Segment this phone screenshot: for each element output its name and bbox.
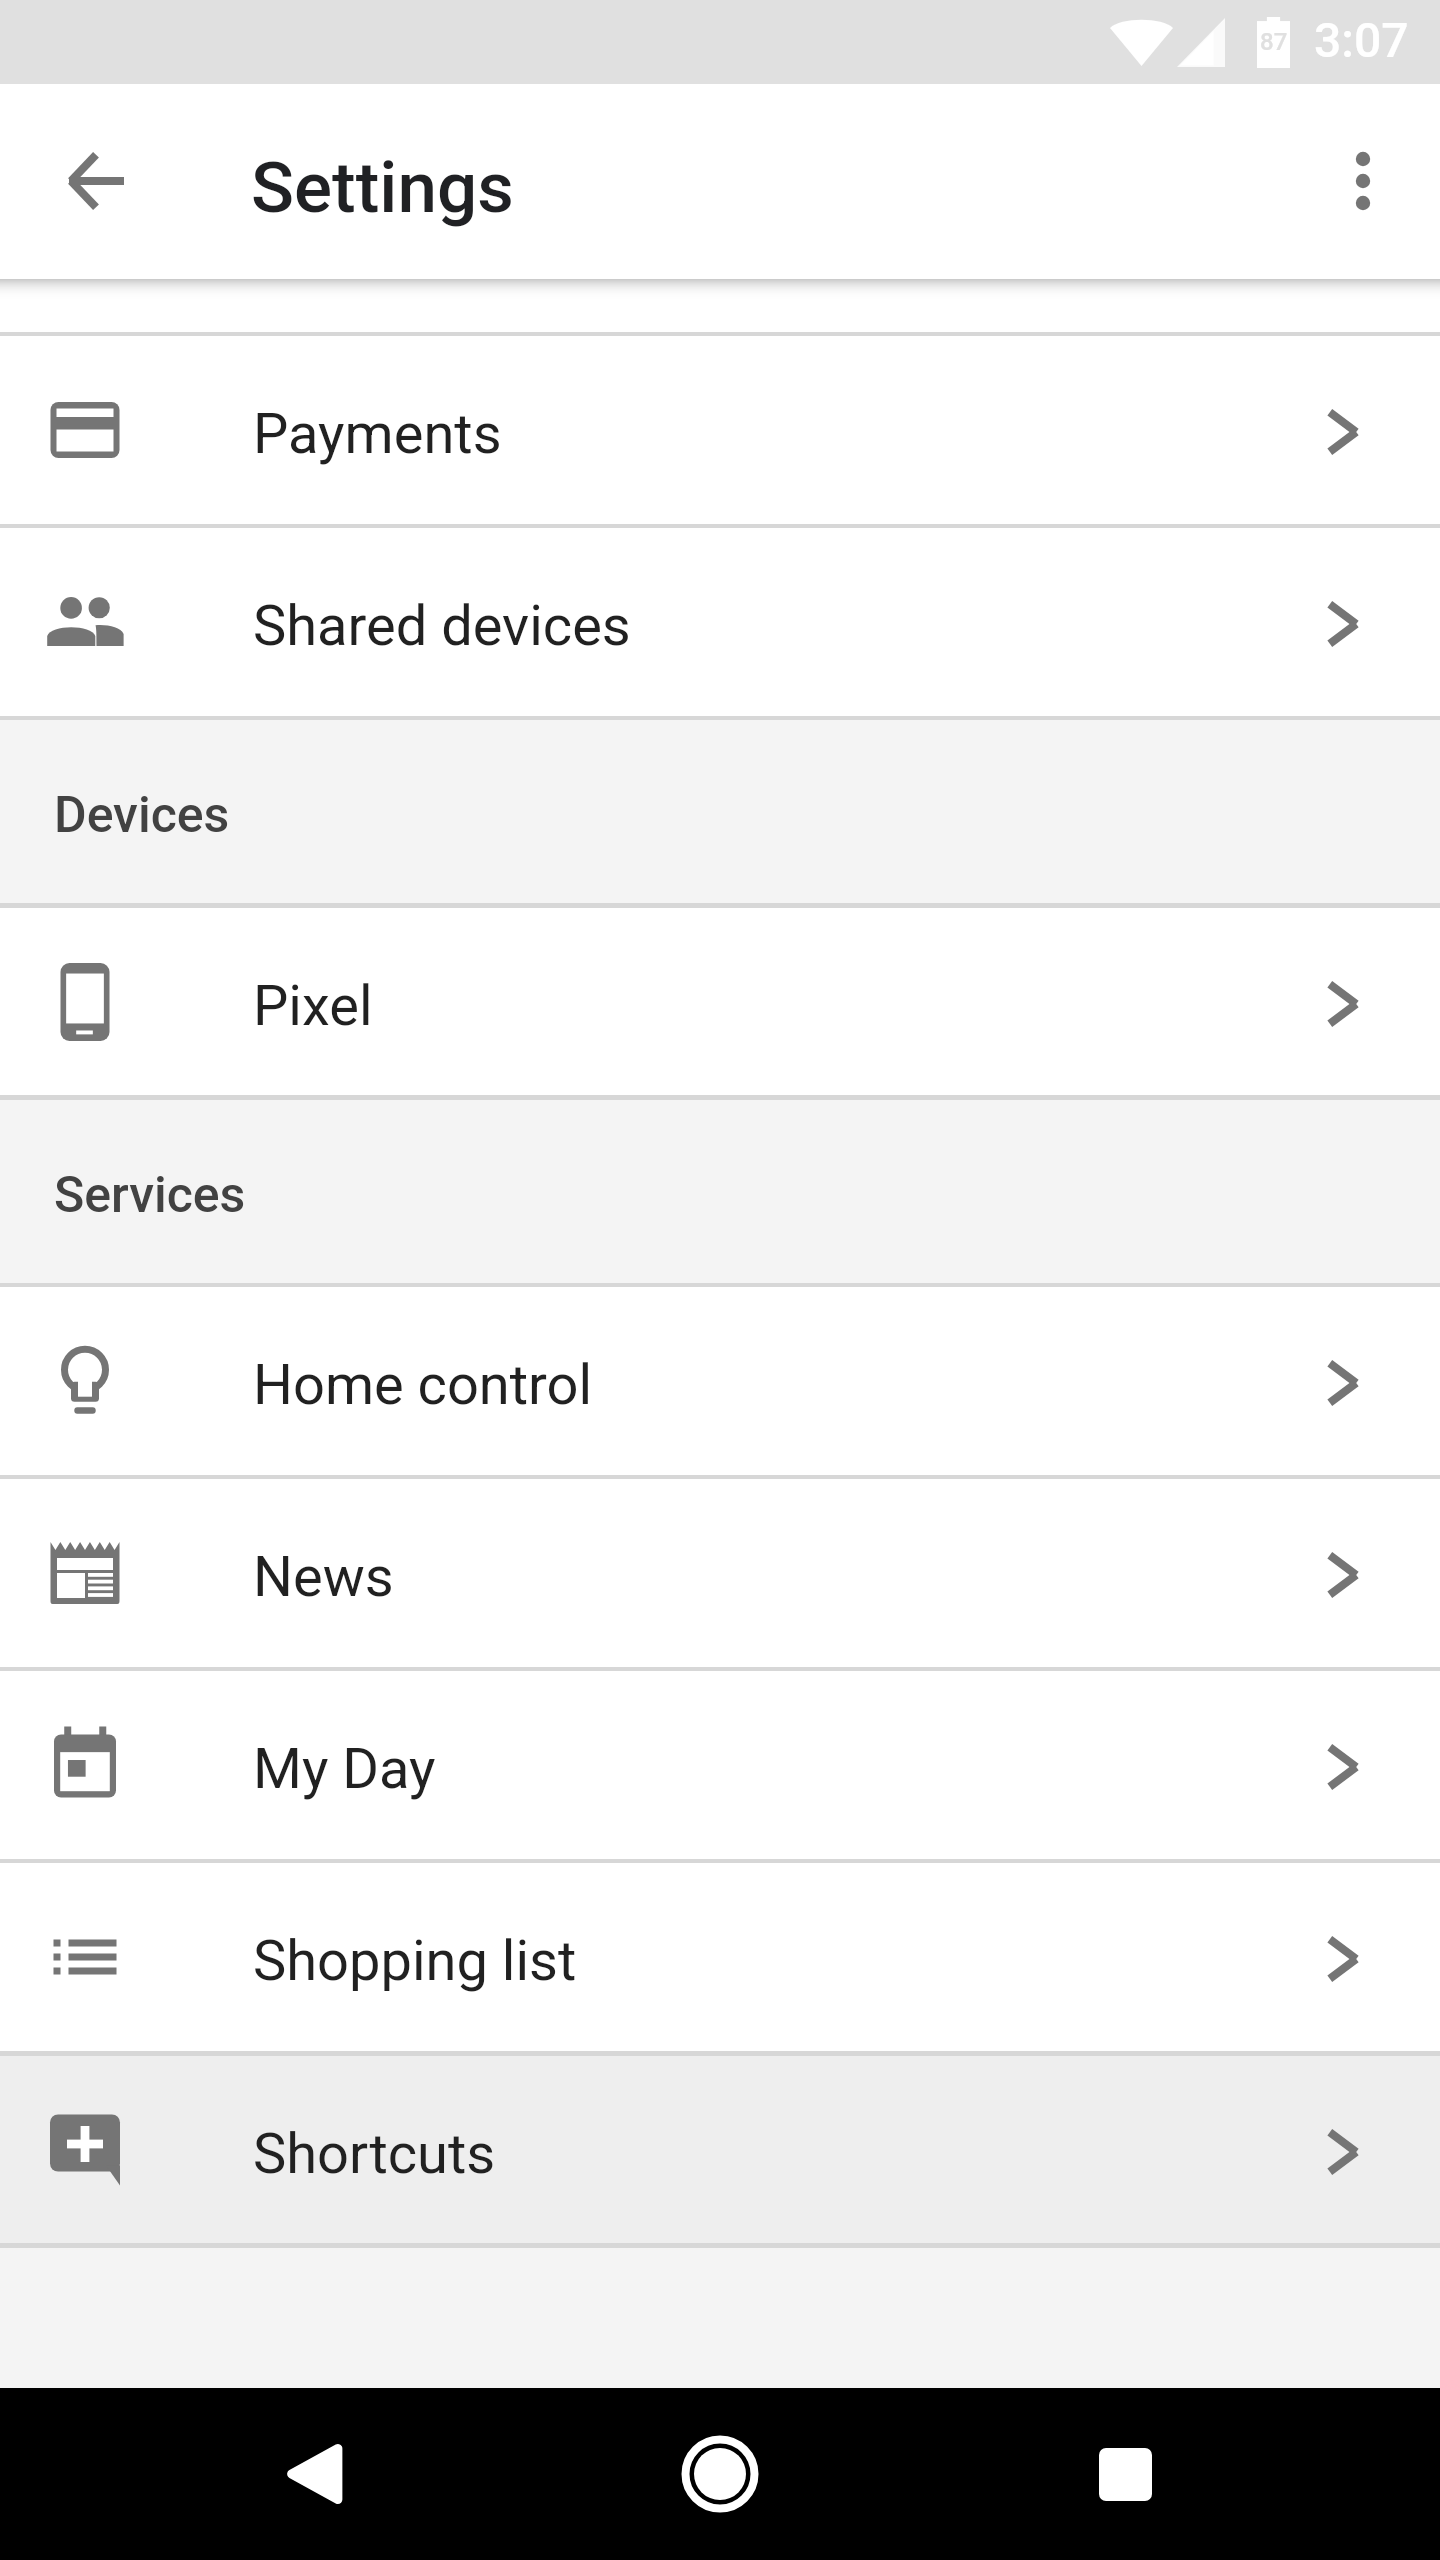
button[interactable]: My Day: [0, 1671, 1440, 1859]
button[interactable]: Shortcuts: [0, 2056, 1440, 2244]
staticText: Shared devices: [253, 593, 631, 659]
button[interactable]: Back: [195, 2388, 435, 2560]
staticText: 87: [1260, 28, 1288, 56]
button[interactable]: Shopping list: [0, 1863, 1440, 2051]
staticText: Shopping list: [253, 1928, 577, 1994]
staticText: Home control: [253, 1352, 593, 1418]
staticText: 3:07: [1314, 12, 1409, 68]
staticText: Settings: [251, 146, 514, 229]
staticText: Payments: [253, 401, 502, 467]
button[interactable]: Pixel: [0, 908, 1440, 1096]
button[interactable]: Home control: [0, 1287, 1440, 1475]
staticText: News: [253, 1544, 394, 1610]
staticText: Shortcuts: [253, 2121, 496, 2187]
button[interactable]: Navigate up: [26, 111, 166, 251]
button[interactable]: More options: [1298, 116, 1428, 246]
staticText: Devices: [54, 786, 230, 845]
button[interactable]: News: [0, 1479, 1440, 1667]
staticText: Services: [54, 1166, 246, 1225]
button[interactable]: Recent apps: [1005, 2388, 1245, 2560]
button[interactable]: Shared devices: [0, 528, 1440, 716]
staticText: My Day: [253, 1736, 436, 1802]
button[interactable]: Home: [600, 2388, 840, 2560]
button[interactable]: Payments: [0, 336, 1440, 524]
staticText: Pixel: [253, 973, 373, 1039]
